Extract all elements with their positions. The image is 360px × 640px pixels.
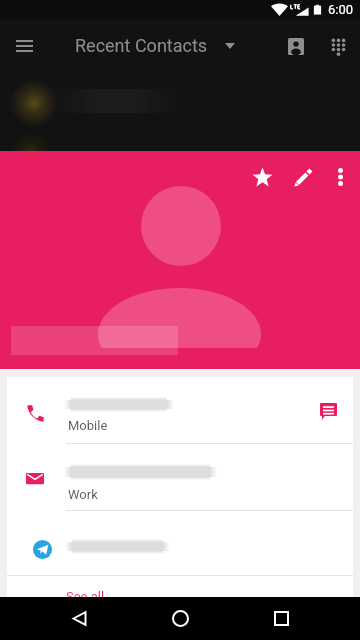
button[interactable]: Back	[63, 602, 95, 634]
button[interactable]: Dialpad	[322, 30, 354, 62]
staticText: See all	[66, 589, 105, 597]
button[interactable]: Recent apps	[265, 602, 297, 634]
button[interactable]: More options	[320, 157, 360, 197]
button[interactable]: Edit contact	[283, 157, 323, 197]
button[interactable]: Send message	[311, 394, 345, 428]
button[interactable]: Open navigation drawer	[8, 30, 40, 62]
button[interactable]: Recent Contacts	[75, 35, 235, 56]
button[interactable]: Mobile	[7, 377, 353, 443]
button[interactable]: Contacts	[280, 30, 312, 62]
staticText: Work	[68, 487, 98, 502]
button[interactable]: Add to favourites	[242, 157, 282, 197]
staticText: Recent Contacts	[75, 35, 208, 56]
staticText: Mobile	[68, 418, 108, 433]
staticText: 6:00	[328, 2, 354, 17]
button[interactable]	[7, 510, 353, 575]
button[interactable]: Work	[7, 443, 353, 510]
button[interactable]: Home	[164, 602, 196, 634]
